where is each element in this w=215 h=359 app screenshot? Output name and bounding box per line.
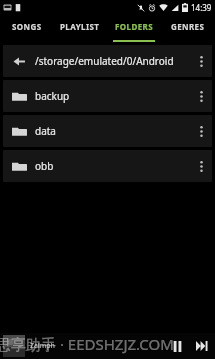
button[interactable]: More options (190, 80, 212, 112)
staticText: Zaimph (30, 341, 55, 351)
staticText: GENRES (171, 21, 205, 32)
button[interactable]: Next (189, 333, 215, 359)
staticText: 14:39 (191, 2, 212, 13)
button[interactable]: /storage/emulated/0/Android (3, 45, 212, 77)
button[interactable]: Zaimph (0, 333, 215, 359)
button[interactable]: Pause (165, 333, 189, 359)
staticText: FOLDERS (115, 21, 153, 32)
staticText: SONGS (12, 21, 42, 32)
button[interactable]: backup (3, 80, 212, 112)
staticText: backup (35, 89, 190, 103)
button[interactable]: FOLDERS (107, 15, 161, 42)
button[interactable]: SONGS (0, 15, 53, 42)
button[interactable]: More options (190, 45, 212, 77)
button[interactable]: More options (190, 115, 212, 147)
staticText: PLAYLIST (60, 21, 100, 32)
button[interactable]: data (3, 115, 212, 147)
button[interactable]: PLAYLIST (53, 15, 107, 42)
button[interactable]: More options (190, 150, 212, 182)
button[interactable]: obb (3, 150, 212, 182)
staticText: /storage/emulated/0/Android (35, 54, 190, 68)
button[interactable]: GENRES (161, 15, 215, 42)
staticText: data (35, 124, 190, 138)
staticText: obb (35, 159, 190, 173)
staticText: 思享助手 · EEDSHZJZ.COM (0, 334, 174, 354)
